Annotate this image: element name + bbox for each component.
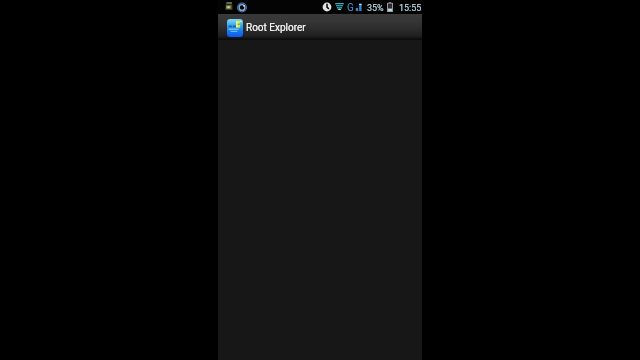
other: Wi-Fi bbox=[335, 3, 344, 10]
other: Download notification bbox=[225, 2, 233, 11]
staticText: G bbox=[347, 2, 354, 14]
other: Sync notification bbox=[237, 2, 247, 13]
other: Battery 35 percent bbox=[387, 2, 393, 12]
other: Cellular signal bbox=[355, 3, 363, 11]
staticText: 15:55 bbox=[399, 3, 422, 14]
staticText: 35% bbox=[367, 3, 384, 14]
button[interactable]: Root Explorer bbox=[218, 14, 328, 40]
staticText: Root Explorer bbox=[246, 22, 306, 34]
other: Alarm set bbox=[322, 2, 332, 12]
